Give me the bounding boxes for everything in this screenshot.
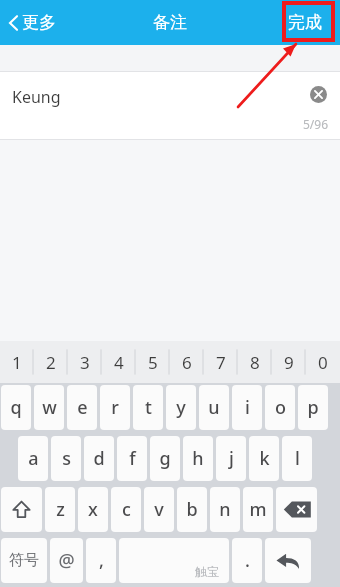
button[interactable]: .	[232, 538, 262, 583]
staticText: 4	[114, 351, 124, 374]
button[interactable]: 4	[102, 341, 136, 383]
button[interactable]: 完成	[282, 6, 328, 39]
staticText: h	[192, 446, 204, 471]
staticText: 9	[284, 351, 294, 374]
button[interactable]: m	[243, 487, 273, 532]
staticText: o	[275, 395, 286, 420]
button[interactable]: 2	[34, 341, 68, 383]
button[interactable]: i	[232, 385, 262, 430]
button[interactable]: 7	[204, 341, 238, 383]
button[interactable]: o	[265, 385, 295, 430]
button[interactable]: j	[216, 436, 246, 481]
staticText: y	[176, 395, 186, 420]
button[interactable]: f	[117, 436, 147, 481]
button[interactable]: 0	[306, 341, 340, 383]
button[interactable]: Shift	[1, 487, 42, 532]
button[interactable]: y	[166, 385, 196, 430]
staticText: 8	[250, 351, 260, 374]
button[interactable]: g	[150, 436, 180, 481]
staticText: e	[77, 395, 88, 420]
button[interactable]: k	[249, 436, 279, 481]
staticText: 符号	[9, 551, 39, 570]
button[interactable]: t	[133, 385, 163, 430]
button[interactable]: @	[50, 538, 83, 583]
staticText: t	[145, 395, 152, 420]
staticText: z	[56, 497, 65, 522]
button[interactable]: v	[144, 487, 174, 532]
staticText: u	[208, 395, 220, 420]
staticText: 7	[216, 351, 226, 374]
button[interactable]: Return	[265, 538, 311, 583]
button[interactable]: 更多	[0, 0, 66, 45]
staticText: 触宝	[195, 564, 219, 579]
staticText: .	[245, 548, 250, 573]
button[interactable]: Clear text	[306, 82, 330, 106]
staticText: l	[295, 446, 300, 471]
button[interactable]: 8	[238, 341, 272, 383]
staticText: Keung	[12, 86, 61, 108]
button[interactable]: q	[1, 385, 31, 430]
staticText: j	[229, 446, 234, 471]
staticText: 5	[148, 351, 158, 374]
button[interactable]: a	[18, 436, 48, 481]
button[interactable]: x	[78, 487, 108, 532]
button[interactable]: p	[298, 385, 328, 430]
staticText: 0	[318, 351, 328, 374]
staticText: x	[88, 497, 98, 522]
staticText: @	[58, 548, 75, 573]
button[interactable]: c	[111, 487, 141, 532]
button[interactable]: 5	[136, 341, 170, 383]
button[interactable]: 符号	[1, 538, 47, 583]
staticText: 3	[80, 351, 90, 374]
button[interactable]: r	[100, 385, 130, 430]
staticText: d	[93, 446, 105, 471]
button[interactable]: 1	[0, 341, 34, 383]
button[interactable]: n	[210, 487, 240, 532]
staticText: n	[219, 497, 231, 522]
button[interactable]: b	[177, 487, 207, 532]
staticText: 2	[46, 351, 56, 374]
button[interactable]: d	[84, 436, 114, 481]
staticText: c	[122, 497, 131, 522]
staticText: w	[42, 395, 57, 420]
button[interactable]: u	[199, 385, 229, 430]
staticText: 6	[182, 351, 192, 374]
staticText: k	[259, 446, 270, 471]
staticText: r	[111, 395, 119, 420]
button[interactable]: z	[45, 487, 75, 532]
staticText: q	[10, 395, 22, 420]
staticText: 1	[12, 351, 22, 374]
staticText: v	[154, 497, 164, 522]
staticText: g	[159, 446, 171, 471]
staticText: m	[249, 497, 267, 522]
button[interactable]: l	[282, 436, 312, 481]
staticText: a	[28, 446, 39, 471]
button[interactable]: h	[183, 436, 213, 481]
button[interactable]: 9	[272, 341, 306, 383]
staticText: f	[129, 446, 136, 471]
staticText: p	[307, 395, 319, 420]
staticText: 更多	[22, 12, 56, 33]
button[interactable]: s	[51, 436, 81, 481]
staticText: 5/96	[303, 116, 329, 132]
button[interactable]: 3	[68, 341, 102, 383]
staticText: 备注	[153, 12, 187, 33]
staticText: i	[245, 395, 250, 420]
button[interactable]: e	[67, 385, 97, 430]
button[interactable]: 6	[170, 341, 204, 383]
button[interactable]: w	[34, 385, 64, 430]
staticText: s	[62, 446, 71, 471]
staticText: ,	[99, 548, 104, 573]
button[interactable]: Space	[119, 538, 229, 583]
staticText: 完成	[288, 12, 322, 33]
button[interactable]: ,	[86, 538, 116, 583]
staticText: b	[186, 497, 198, 522]
button[interactable]: Backspace	[276, 487, 317, 532]
